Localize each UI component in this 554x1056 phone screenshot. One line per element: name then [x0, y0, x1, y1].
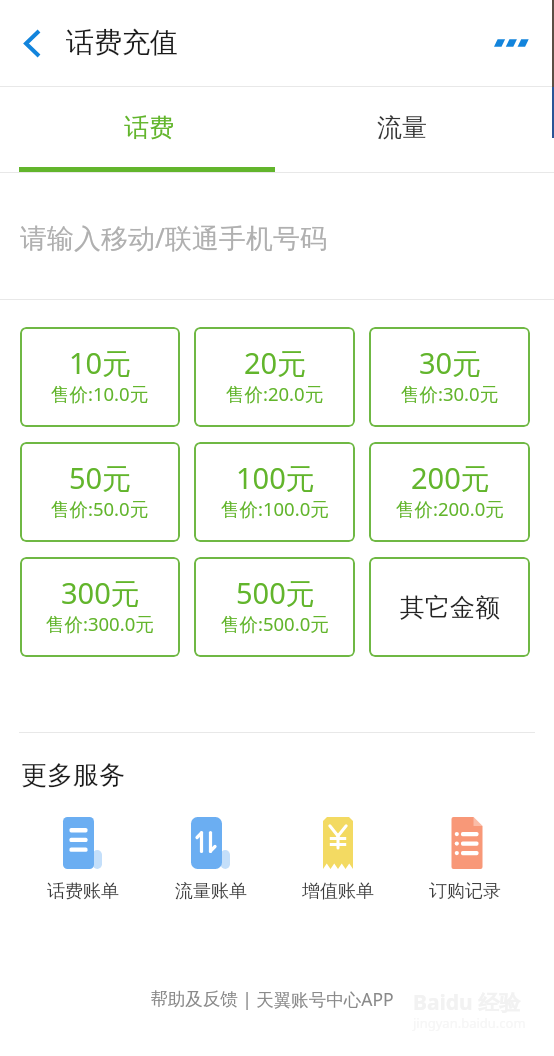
staticText: 500元	[236, 573, 315, 613]
button[interactable]: 30元	[369, 327, 530, 427]
staticText: 流量	[377, 112, 427, 143]
button[interactable]: 天翼账号中心APP	[256, 984, 394, 1014]
staticText: Baidu 经验	[413, 988, 521, 1017]
button[interactable]: 100元	[194, 442, 355, 542]
staticText: 30元	[419, 343, 482, 383]
staticText: 售价:300.0元	[46, 611, 154, 636]
staticText: 售价:50.0元	[51, 496, 149, 521]
staticText: 10元	[69, 343, 132, 383]
button[interactable]: 200元	[369, 442, 530, 542]
staticText: 请输入移动/联通手机号码	[20, 219, 328, 256]
staticText: 200元	[411, 458, 490, 498]
button[interactable]: 300元	[20, 557, 180, 657]
staticText: 订购记录	[429, 880, 501, 903]
staticText: 售价:500.0元	[221, 611, 329, 636]
staticText: 100元	[236, 458, 315, 498]
button[interactable]: 流量	[277, 87, 534, 167]
button[interactable]: 请输入移动/联通手机号码	[0, 173, 554, 299]
staticText: 话费	[124, 112, 174, 143]
staticText: 话费充值	[66, 25, 178, 60]
button[interactable]: 话费账单	[19, 817, 147, 903]
staticText: 更多服务	[21, 759, 125, 792]
button[interactable]: 话费	[20, 87, 277, 167]
button[interactable]: 其它金额	[369, 557, 530, 657]
staticText: 售价:200.0元	[396, 496, 504, 521]
staticText: |	[242, 987, 252, 1011]
button[interactable]: 增值账单	[274, 817, 401, 903]
button[interactable]: 500元	[194, 557, 355, 657]
staticText: 300元	[61, 573, 140, 613]
button[interactable]: 10元	[20, 327, 180, 427]
button[interactable]: 20元	[194, 327, 355, 427]
staticText: 话费账单	[47, 880, 119, 903]
staticText: 售价:100.0元	[221, 496, 329, 521]
staticText: 售价:30.0元	[401, 381, 499, 406]
staticText: 其它金额	[400, 592, 500, 623]
staticText: 20元	[244, 343, 307, 383]
staticText: 流量账单	[175, 880, 247, 903]
button[interactable]: More options	[484, 17, 536, 69]
button[interactable]: 帮助及反馈	[150, 985, 238, 1013]
staticText: 售价:10.0元	[51, 381, 149, 406]
button[interactable]: 订购记录	[401, 817, 528, 903]
staticText: 增值账单	[302, 880, 374, 903]
staticText: jingyan.baidu.com	[413, 1014, 526, 1032]
button[interactable]: 流量账单	[147, 817, 274, 903]
staticText: 50元	[69, 458, 132, 498]
staticText: 售价:20.0元	[226, 381, 324, 406]
button[interactable]: Back	[4, 15, 60, 71]
button[interactable]: 50元	[20, 442, 180, 542]
